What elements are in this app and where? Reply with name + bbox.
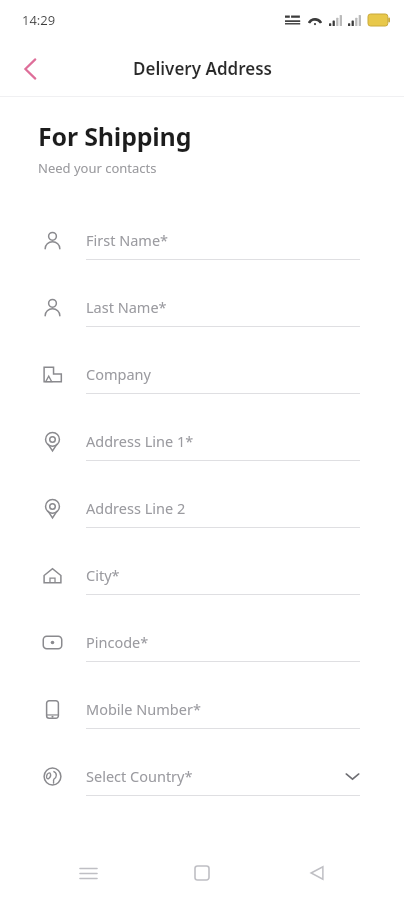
staticText: Address Line 1*: [86, 431, 194, 451]
staticText: Select Country*: [86, 766, 193, 786]
staticText: First Name*: [86, 230, 169, 250]
button[interactable]: Mobile Number*: [0, 690, 404, 757]
staticText: For Shipping: [38, 119, 192, 153]
staticText: Delivery Address: [133, 57, 272, 80]
button[interactable]: Home: [175, 846, 229, 900]
staticText: Last Name*: [86, 297, 167, 317]
button[interactable]: First Name*: [0, 221, 404, 288]
staticText: City*: [86, 565, 120, 585]
button[interactable]: Select Country*: [0, 757, 404, 824]
staticText: Company: [86, 364, 151, 384]
button[interactable]: Back: [290, 846, 344, 900]
staticText: Mobile Number*: [86, 699, 201, 719]
button[interactable]: Address Line 1*: [0, 422, 404, 489]
button[interactable]: Recents: [61, 846, 115, 900]
button[interactable]: Company: [0, 355, 404, 422]
staticText: Address Line 2: [86, 498, 186, 518]
button[interactable]: Back: [8, 47, 52, 91]
button[interactable]: City*: [0, 556, 404, 623]
staticText: Need your contacts: [38, 159, 157, 177]
button[interactable]: Pincode*: [0, 623, 404, 690]
button[interactable]: Last Name*: [0, 288, 404, 355]
staticText: 14:29: [22, 11, 56, 29]
button[interactable]: Address Line 2: [0, 489, 404, 556]
staticText: Pincode*: [86, 632, 149, 652]
